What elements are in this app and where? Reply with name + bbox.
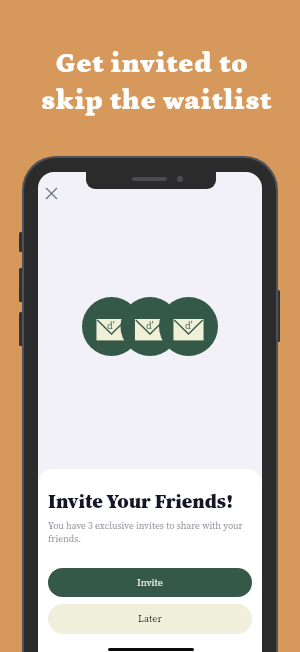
button[interactable]: Close [40, 182, 63, 205]
staticText: dʼ [146, 319, 154, 331]
staticText: dʼ [185, 319, 193, 331]
staticText: Later [138, 612, 162, 626]
staticText: Invite [137, 576, 163, 590]
staticText: skip the waitlist [41, 85, 272, 117]
staticText: Invite Your Friends! [48, 487, 234, 514]
staticText: Get invited to [56, 48, 249, 80]
button[interactable]: Invite [48, 568, 252, 597]
staticText: dʼ [107, 319, 115, 331]
staticText: You have 3 exclusive invites to share wi… [48, 519, 252, 545]
button[interactable]: Later [48, 604, 252, 634]
